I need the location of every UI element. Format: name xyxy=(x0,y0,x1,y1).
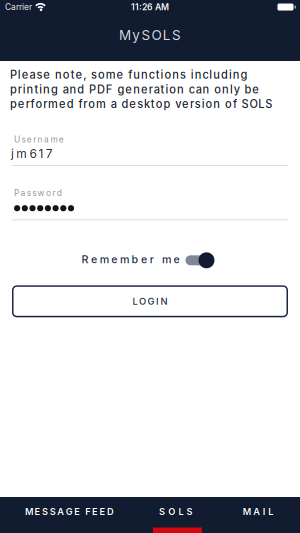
staticText: S xyxy=(50,506,56,517)
staticText: n xyxy=(172,68,179,81)
staticText: , xyxy=(83,68,86,81)
staticText: a xyxy=(29,68,35,81)
staticText: S xyxy=(242,97,249,111)
staticText: l xyxy=(209,68,212,81)
staticText: m xyxy=(48,97,58,111)
staticText: s xyxy=(21,134,25,144)
staticText: s xyxy=(137,97,143,111)
staticText: f xyxy=(128,68,132,81)
staticText: S xyxy=(141,27,150,43)
staticText: U xyxy=(14,134,20,144)
staticText: o xyxy=(169,83,176,96)
staticText: n xyxy=(202,83,209,96)
staticText: v xyxy=(175,97,181,111)
button[interactable]: MAIL xyxy=(243,506,273,517)
staticText: n xyxy=(69,83,76,96)
staticText: O xyxy=(168,506,175,517)
staticText: L xyxy=(268,506,273,517)
staticText: e xyxy=(141,253,147,266)
staticText: o xyxy=(214,83,221,96)
staticText: S xyxy=(159,506,165,517)
staticText: n xyxy=(222,83,229,96)
staticText: a xyxy=(44,134,49,144)
staticText: f xyxy=(78,97,82,111)
button[interactable]: SOLS xyxy=(159,506,193,517)
staticText: n xyxy=(195,68,202,81)
staticText: b xyxy=(244,83,251,96)
staticText: D xyxy=(107,506,114,517)
staticText: y xyxy=(234,83,240,96)
staticText: g xyxy=(117,83,124,96)
staticText: S xyxy=(187,506,193,517)
staticText: 1 xyxy=(39,146,44,161)
button[interactable]: LOGIN xyxy=(12,285,288,317)
staticText: o xyxy=(164,68,171,81)
staticText: e xyxy=(91,253,97,266)
staticText: i xyxy=(191,68,194,81)
staticText: i xyxy=(160,68,163,81)
staticText: g xyxy=(241,68,248,81)
staticText: f xyxy=(30,97,34,111)
staticText: m xyxy=(106,68,116,81)
staticText: e xyxy=(173,253,179,266)
staticText: 6 xyxy=(29,146,36,161)
staticText: d xyxy=(57,188,62,198)
staticText: I xyxy=(156,296,159,307)
staticText: s xyxy=(36,68,42,81)
staticText: L xyxy=(163,27,171,43)
staticText: j xyxy=(11,146,14,161)
staticText: o xyxy=(225,97,232,111)
staticText: m xyxy=(16,146,27,161)
staticText: r xyxy=(150,253,154,266)
staticText: o xyxy=(205,97,212,111)
staticText: w xyxy=(38,188,45,198)
staticText: e xyxy=(111,253,117,266)
staticText: D xyxy=(97,83,105,96)
staticText: t xyxy=(71,68,75,81)
staticText: t xyxy=(151,97,155,111)
staticText: a xyxy=(63,83,69,96)
staticText: e xyxy=(141,83,148,96)
staticText: E xyxy=(99,506,105,517)
button[interactable]: Remember me xyxy=(185,251,214,267)
staticText: P xyxy=(10,68,17,81)
staticText: a xyxy=(111,97,117,111)
staticText: I xyxy=(263,506,266,517)
staticText: c xyxy=(189,83,195,96)
staticText: b xyxy=(131,253,138,266)
staticText: A xyxy=(57,506,64,517)
staticText: o xyxy=(88,97,95,111)
staticText: i xyxy=(229,68,232,81)
staticText: i xyxy=(202,97,205,111)
staticText: o xyxy=(98,68,105,81)
staticText: o xyxy=(35,97,42,111)
staticText: G xyxy=(66,506,73,517)
staticText: M xyxy=(25,506,33,517)
staticText: m xyxy=(50,134,57,144)
staticText: r xyxy=(43,97,47,111)
staticText: S xyxy=(42,506,48,517)
staticText: u xyxy=(133,68,140,81)
staticText: n xyxy=(27,83,34,96)
staticText: l xyxy=(230,83,233,96)
button[interactable]: MESSAGE FEED xyxy=(25,506,114,517)
staticText: t xyxy=(34,83,38,96)
staticText: S xyxy=(265,97,272,111)
staticText: G xyxy=(147,296,154,307)
staticText: d xyxy=(121,97,128,111)
staticText: a xyxy=(154,83,160,96)
staticText: u xyxy=(213,68,220,81)
staticText: e xyxy=(22,68,29,81)
staticText: p xyxy=(163,97,170,111)
staticText: L xyxy=(132,296,137,307)
staticText: A xyxy=(253,506,260,517)
staticText: d xyxy=(67,97,74,111)
staticText: n xyxy=(38,134,43,144)
staticText: S xyxy=(172,27,181,43)
